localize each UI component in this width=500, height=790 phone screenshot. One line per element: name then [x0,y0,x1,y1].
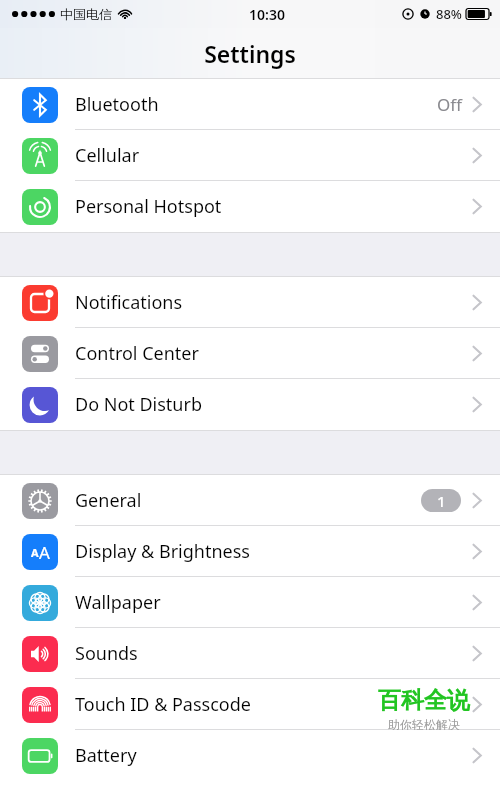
staticText: Sounds [75,641,138,666]
staticText: Display & Brightness [75,539,250,564]
button[interactable]: A [0,526,500,577]
staticText: 88% [436,5,462,23]
button[interactable]: Sounds [0,628,500,679]
staticText: A [39,541,50,564]
button[interactable]: Personal Hotspot [0,181,500,232]
button[interactable]: Wallpaper [0,577,500,628]
staticText: 中国电信 [60,6,112,22]
staticText: Control Center [75,341,199,366]
staticText: Touch ID & Passcode [75,692,251,717]
button[interactable]: Do Not Disturb [0,379,500,430]
staticText: Off [437,93,462,116]
staticText: General [75,488,142,513]
button[interactable]: Notifications [0,277,500,328]
button[interactable]: Bluetooth [0,79,500,130]
staticText: 10:30 [249,5,285,24]
staticText: 助你轻松解决 [388,717,460,732]
staticText: Bluetooth [75,92,159,117]
staticText: 1 [437,491,446,511]
staticText: Wallpaper [75,590,161,615]
staticText: 百科全说 [378,686,470,715]
button[interactable]: Control Center [0,328,500,379]
staticText: Cellular [75,143,140,168]
button[interactable]: General [0,475,500,526]
staticText: Battery [75,743,137,768]
staticText: Notifications [75,290,183,315]
button[interactable]: Cellular [0,130,500,181]
button[interactable]: Battery [0,730,500,781]
button[interactable]: Touch ID & Passcode [0,679,500,730]
staticText: Do Not Disturb [75,392,202,417]
staticText: Personal Hotspot [75,194,222,219]
staticText: Settings [204,38,296,69]
staticText: A [31,545,39,560]
